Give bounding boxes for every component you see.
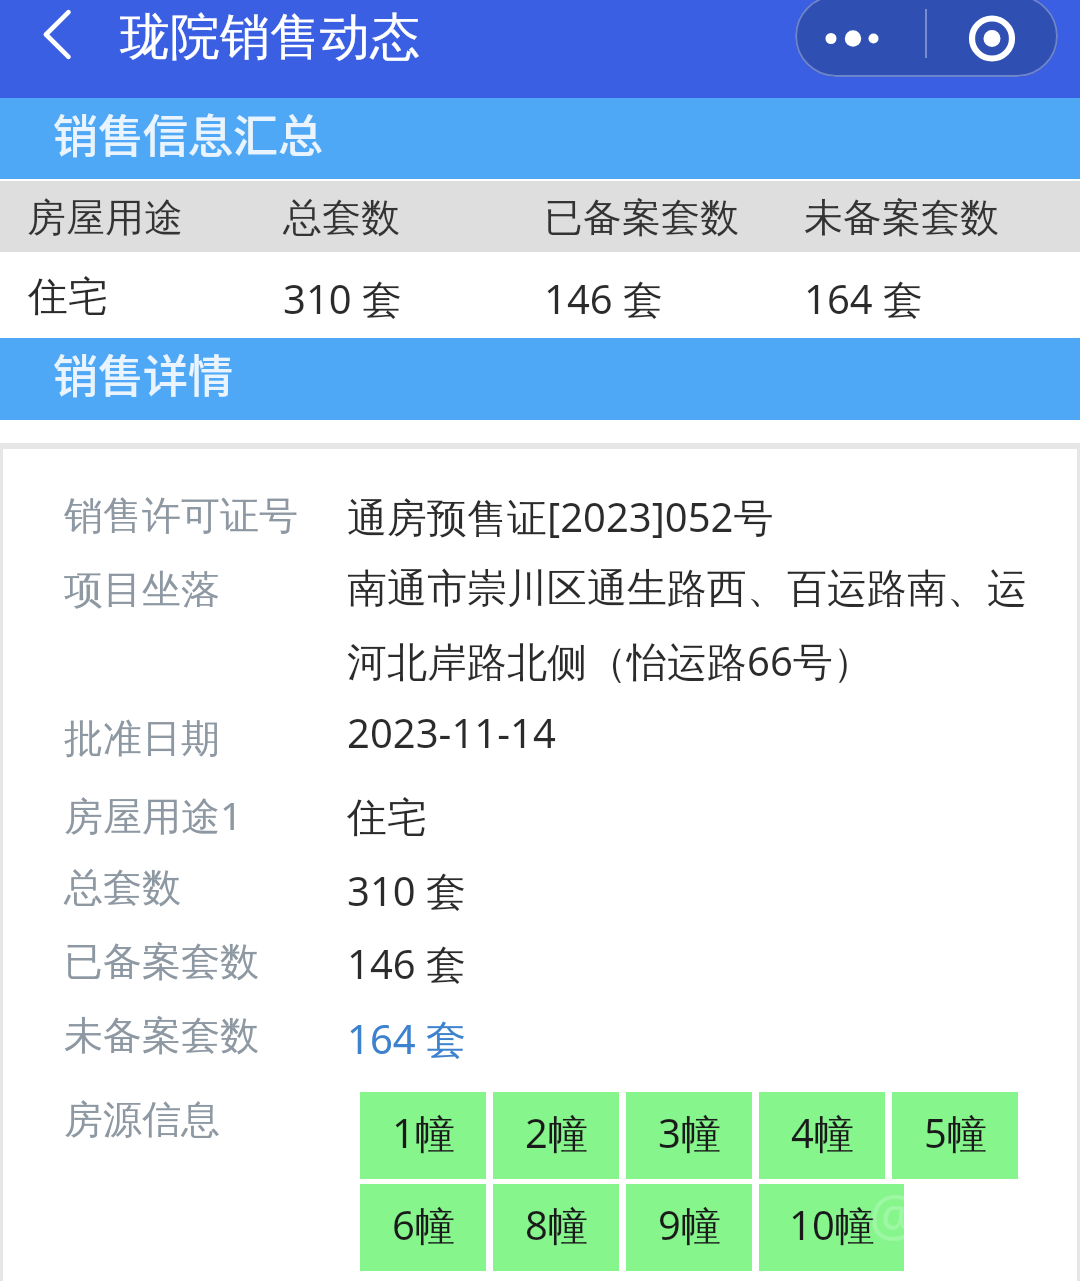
staticText: 310 套 <box>347 863 467 918</box>
button[interactable]: 2幢 <box>493 1092 619 1179</box>
staticText: 2023-11-14 <box>347 705 556 759</box>
staticText: 未备案套数 <box>804 193 999 242</box>
button[interactable]: 4幢 <box>759 1092 885 1179</box>
staticText: 销售许可证号 <box>64 491 298 540</box>
staticText: @ <box>869 1176 920 1252</box>
staticText: 2幢 <box>525 1105 588 1160</box>
staticText: 已备案套数 <box>544 193 739 242</box>
staticText: 河北岸路北侧（怡运路66号） <box>347 633 873 688</box>
button[interactable]: Back <box>16 0 92 98</box>
staticText: 9幢 <box>658 1197 721 1252</box>
button[interactable]: 销售详情 <box>0 338 1080 420</box>
staticText: 总套数 <box>283 193 400 242</box>
staticText: 10幢 <box>789 1197 875 1252</box>
staticText: 5幢 <box>924 1105 987 1160</box>
staticText: 总套数 <box>64 863 181 912</box>
staticText: 批准日期 <box>64 714 220 763</box>
staticText: 项目坐落 <box>64 565 220 614</box>
staticText: 1幢 <box>392 1105 455 1160</box>
staticText: 住宅 <box>347 792 427 842</box>
staticText: 南通市崇川区通生路西、百运路南、运 <box>347 563 1027 613</box>
staticText: 8幢 <box>525 1197 588 1252</box>
staticText: 310 套 <box>283 271 403 326</box>
staticText: 房屋用途1 <box>64 788 243 841</box>
staticText: 销售详情 <box>53 341 234 406</box>
staticText: 164 套 <box>347 1011 467 1066</box>
button[interactable]: 8幢 <box>493 1184 619 1271</box>
staticText: 已备案套数 <box>64 937 259 986</box>
button[interactable]: 6幢 <box>360 1184 486 1271</box>
staticText: 房屋用途 <box>27 193 183 242</box>
button[interactable]: 5幢 <box>892 1092 1018 1179</box>
button[interactable]: 销售信息汇总 <box>0 98 1080 179</box>
staticText: 通房预售证[2023]052号 <box>347 489 774 544</box>
staticText: 未备案套数 <box>64 1011 259 1060</box>
button[interactable]: 9幢 <box>626 1184 752 1271</box>
staticText: 4幢 <box>791 1105 854 1160</box>
button[interactable]: 3幢 <box>626 1092 752 1179</box>
staticText: 146 套 <box>544 271 664 326</box>
staticText: 销售信息汇总 <box>53 101 324 166</box>
staticText: 房源信息 <box>64 1095 220 1144</box>
staticText: 164 套 <box>804 271 924 326</box>
staticText: 珑院销售动态 <box>120 6 420 69</box>
staticText: 6幢 <box>392 1197 455 1252</box>
button[interactable]: More options <box>795 0 926 77</box>
staticText: 住宅 <box>28 271 108 321</box>
staticText: 146 套 <box>347 936 467 991</box>
button[interactable]: 1幢 <box>360 1092 486 1179</box>
staticText: 3幢 <box>658 1105 721 1160</box>
button[interactable]: Close mini program <box>926 0 1057 77</box>
button[interactable]: 10幢 <box>759 1184 904 1271</box>
